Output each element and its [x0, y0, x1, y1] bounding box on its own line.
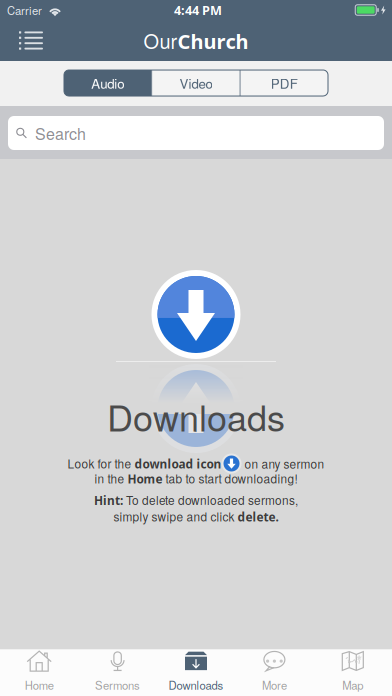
staticText: Map [342, 677, 363, 693]
staticText: in the Home tab to start downloading! [94, 470, 297, 487]
staticText: Downloads [107, 390, 285, 442]
staticText: Search [35, 121, 86, 144]
button[interactable]: Map [314, 649, 392, 696]
staticText: More [262, 677, 287, 693]
button[interactable]: Video [152, 70, 240, 96]
button[interactable]: Menu [0, 20, 55, 61]
staticText: Downloads [168, 677, 223, 693]
button[interactable]: Sermons [78, 649, 157, 696]
staticText: simply swipe and click delete. [113, 508, 278, 525]
button[interactable]: Home [0, 649, 78, 696]
button[interactable]: Audio [64, 70, 151, 96]
staticText: Look for the download icon [67, 455, 221, 472]
staticText: Video [179, 73, 212, 93]
staticText: Home [25, 677, 54, 693]
staticText: PDF [271, 73, 298, 93]
button[interactable]: More [235, 649, 314, 696]
staticText: Audio [91, 73, 124, 93]
staticText: 4:44 PM [174, 1, 222, 19]
staticText: Sermons [95, 677, 140, 693]
button[interactable]: PDF [241, 70, 328, 96]
button[interactable]: Downloads [157, 649, 235, 696]
staticText: Carrier [7, 2, 42, 18]
staticText: Hint: To delete downloaded sermons, [94, 492, 298, 508]
staticText: on any sermon [241, 455, 324, 472]
staticText: OurChurch [143, 26, 248, 54]
